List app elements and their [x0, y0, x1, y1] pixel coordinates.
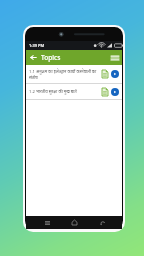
button[interactable]: 1.2 भारतीय सुरक्षा की मुख बातें [26, 84, 122, 100]
button[interactable]: Recents [40, 216, 54, 229]
button[interactable]: Home [67, 216, 81, 229]
button[interactable]: Back [95, 216, 109, 229]
other: Document [102, 70, 108, 78]
button[interactable]: Back [28, 52, 39, 63]
staticText: Topics [41, 53, 61, 62]
button[interactable]: 1.1 अनुक्रम का इलेक्ट्रान कार्यो करनेवाल… [26, 65, 122, 84]
staticText: 1.2 भारतीय सुरक्षा की मुख बातें [29, 89, 77, 95]
other: Document [102, 88, 108, 96]
button[interactable]: Menu [109, 52, 120, 63]
button[interactable]: Play [111, 70, 119, 78]
staticText: 1.1 अनुक्रम का इलेक्ट्रान कार्यो करनेवाल… [29, 69, 100, 80]
button[interactable]: Play [111, 88, 119, 96]
staticText: 1:39 PM [29, 43, 45, 48]
